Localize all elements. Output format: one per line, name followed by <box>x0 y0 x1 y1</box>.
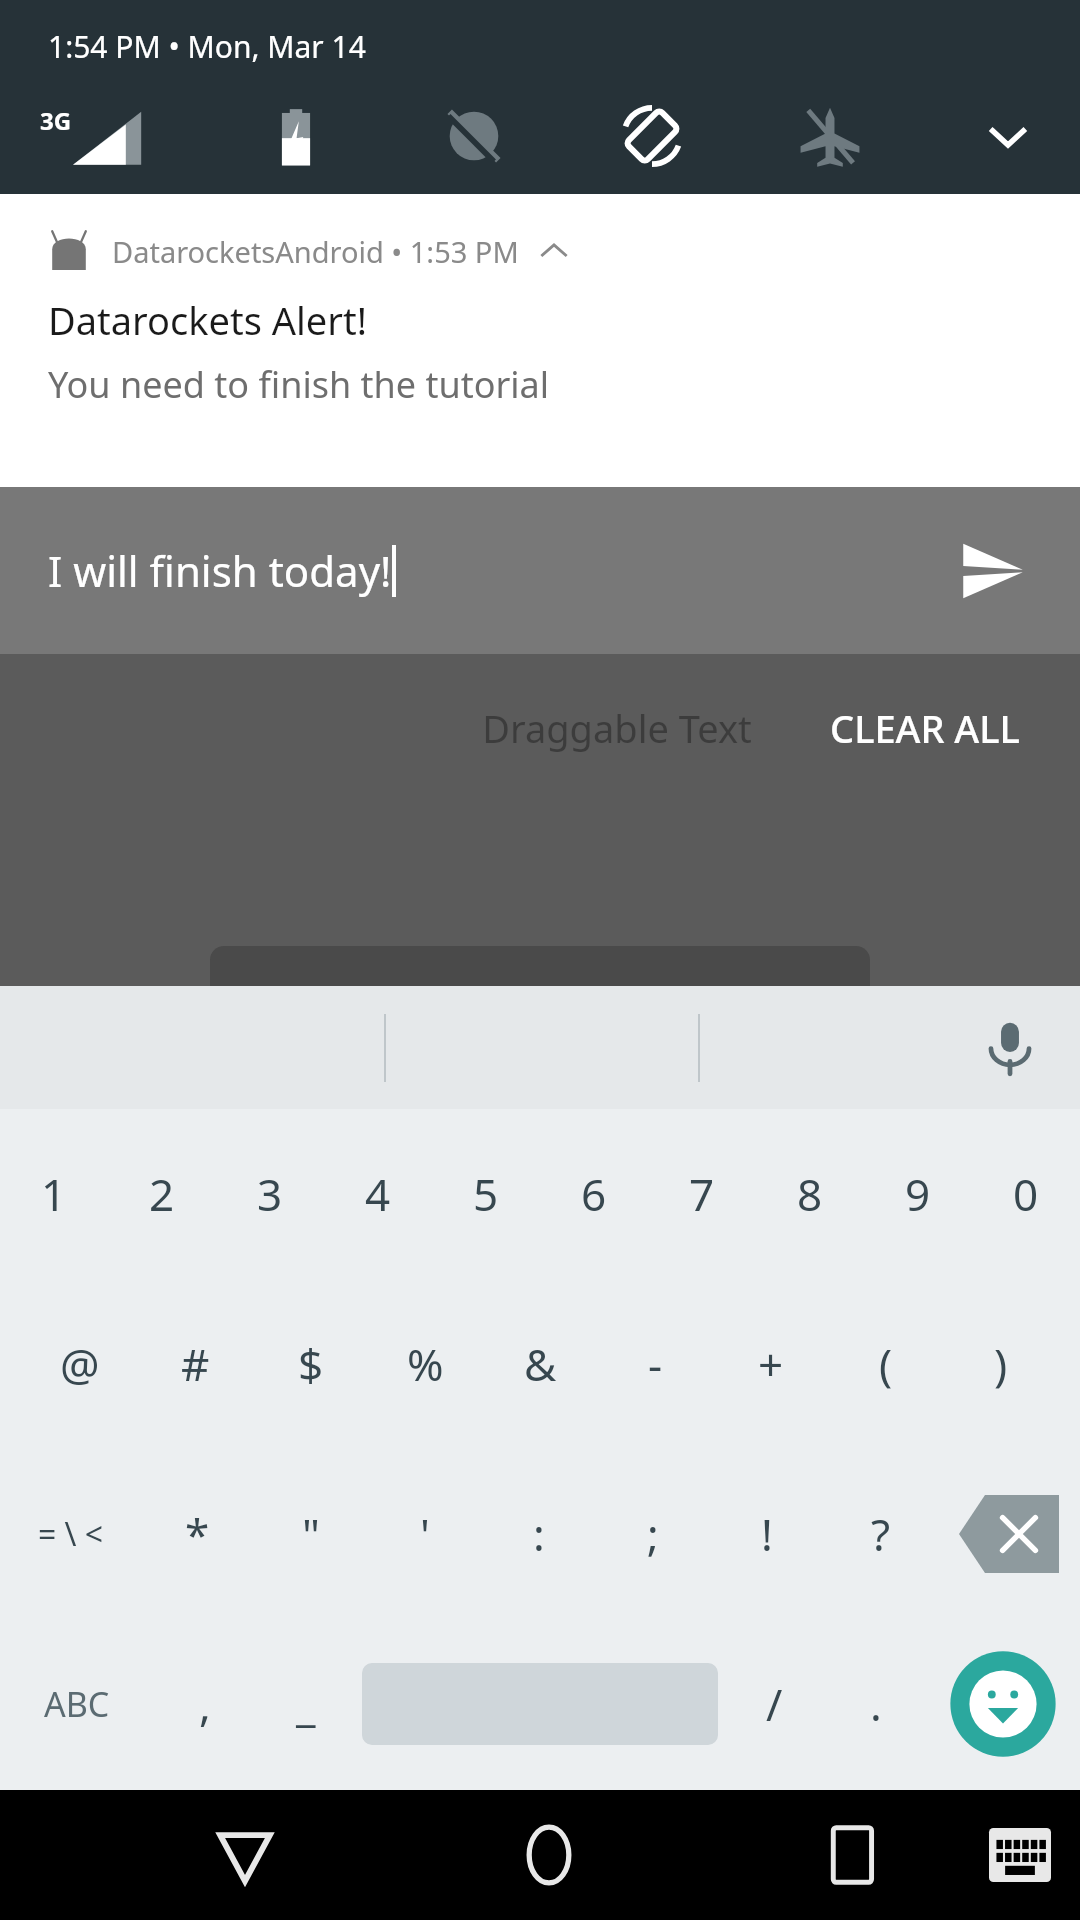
button[interactable]: ' <box>368 1449 482 1619</box>
button[interactable]: & <box>483 1279 598 1449</box>
staticText: : <box>533 1504 545 1564</box>
button[interactable]: 6 <box>540 1109 648 1279</box>
button[interactable]: Home <box>494 1800 604 1910</box>
button[interactable]: Emoji <box>926 1619 1080 1789</box>
button[interactable]: 3 <box>216 1109 324 1279</box>
staticText: % <box>407 1334 444 1394</box>
button[interactable]: DatarocketsAndroid • 1:53 PM <box>0 194 1080 487</box>
button[interactable]: Switch keyboard <box>970 1805 1070 1905</box>
staticText: ! <box>761 1504 773 1564</box>
button[interactable]: * <box>141 1449 254 1619</box>
button[interactable]: Send reply <box>950 528 1036 614</box>
staticText: & <box>524 1334 557 1394</box>
staticText: " <box>302 1504 320 1564</box>
staticText: 3G <box>40 104 72 137</box>
button[interactable]: # <box>138 1279 253 1449</box>
button[interactable]: ; <box>596 1449 710 1619</box>
staticText: _ <box>296 1674 316 1734</box>
button[interactable]: Recent apps <box>798 1800 908 1910</box>
staticText: * <box>185 1504 210 1564</box>
button[interactable]: Back <box>190 1800 300 1910</box>
button[interactable]: . <box>825 1619 926 1789</box>
button[interactable]: + <box>713 1279 828 1449</box>
staticText: 7 <box>689 1164 715 1224</box>
staticText: # <box>181 1334 210 1394</box>
button[interactable]: 0 <box>972 1109 1080 1279</box>
staticText: 8 <box>797 1164 823 1224</box>
staticText: ? <box>871 1504 891 1564</box>
button[interactable]: % <box>368 1279 483 1449</box>
button[interactable]: : <box>482 1449 596 1619</box>
button[interactable]: 1 <box>0 1109 108 1279</box>
button[interactable]: Expand quick settings <box>976 104 1040 168</box>
staticText: ' <box>420 1504 430 1564</box>
button[interactable]: - <box>598 1279 713 1449</box>
staticText: 5 <box>473 1164 499 1224</box>
button[interactable]: ? <box>824 1449 938 1619</box>
button[interactable]: Draggable Text <box>482 702 752 754</box>
button[interactable]: ( <box>828 1279 943 1449</box>
staticText: . <box>870 1674 882 1734</box>
staticText: 9 <box>905 1164 931 1224</box>
staticText: I will finish today! <box>48 542 392 599</box>
staticText: 2 <box>149 1164 175 1224</box>
staticText: ( <box>879 1334 893 1394</box>
button[interactable]: $ <box>253 1279 368 1449</box>
button[interactable]: 2 <box>108 1109 216 1279</box>
staticText: ABC <box>44 1681 110 1727</box>
button[interactable]: ) <box>943 1279 1058 1449</box>
button[interactable]: 5 <box>432 1109 540 1279</box>
button[interactable]: ! <box>710 1449 824 1619</box>
staticText: 1 <box>41 1164 67 1224</box>
staticText: / <box>766 1674 783 1734</box>
staticText: , <box>199 1674 211 1734</box>
staticText: - <box>648 1334 663 1394</box>
button[interactable]: / <box>724 1619 825 1789</box>
staticText: ) <box>994 1334 1008 1394</box>
button[interactable]: _ <box>255 1619 356 1789</box>
staticText: 4 <box>365 1164 391 1224</box>
staticText: You need to finish the tutorial <box>48 360 550 409</box>
staticText: @ <box>60 1334 100 1394</box>
staticText: 0 <box>1013 1164 1039 1224</box>
button[interactable]: Collapse notification <box>537 234 571 268</box>
staticText: $ <box>298 1334 324 1394</box>
staticText: Datarockets Alert! <box>48 294 367 346</box>
button[interactable]: Voice input <box>974 1012 1046 1084</box>
button[interactable]: 4 <box>324 1109 432 1279</box>
button[interactable]: 8 <box>756 1109 864 1279</box>
staticText: DatarocketsAndroid • 1:53 PM <box>112 232 519 271</box>
staticText: + <box>758 1334 784 1394</box>
button[interactable]: , <box>154 1619 255 1789</box>
button[interactable]: = \ < <box>0 1449 141 1619</box>
button[interactable]: Backspace <box>938 1449 1080 1619</box>
button[interactable]: 7 <box>648 1109 756 1279</box>
button[interactable]: CLEAR ALL <box>822 702 1028 754</box>
button[interactable]: 9 <box>864 1109 972 1279</box>
staticText: 1:54 PM • Mon, Mar 14 <box>48 26 366 67</box>
staticText: 6 <box>581 1164 607 1224</box>
staticText: 3 <box>257 1164 283 1224</box>
button[interactable]: " <box>254 1449 368 1619</box>
staticText: ; <box>647 1504 659 1564</box>
staticText: = \ < <box>38 1512 104 1556</box>
button[interactable]: @ <box>22 1279 138 1449</box>
button[interactable]: ABC <box>0 1619 154 1789</box>
